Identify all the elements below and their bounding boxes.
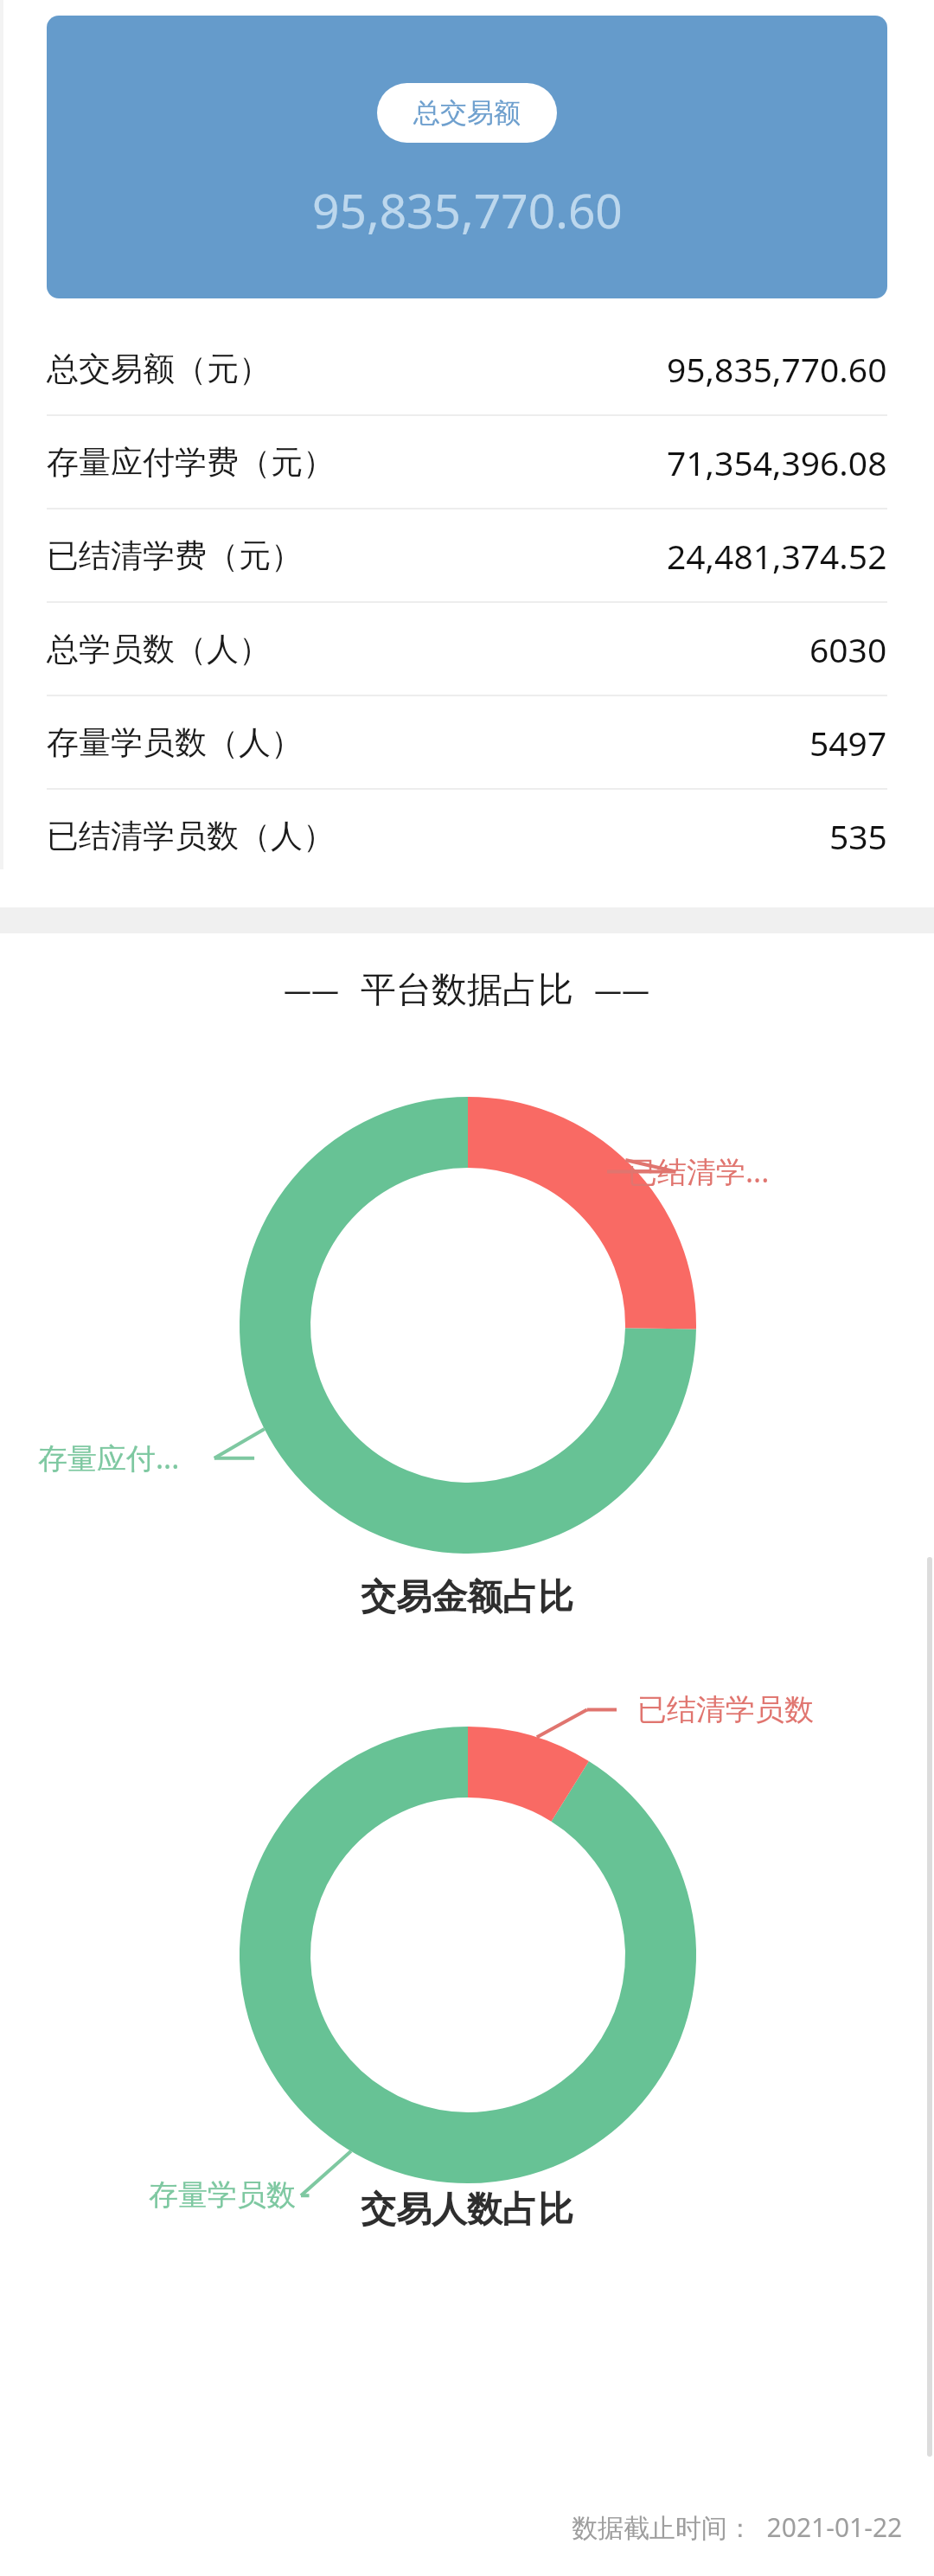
staticText: 95,835,770.60 [667, 346, 887, 392]
staticText: 存量应付学费（元） [47, 442, 335, 483]
staticText: 总交易额 [413, 96, 521, 130]
staticText: 95,835,770.60 [312, 177, 623, 242]
staticText: 已结清学员数（人） [47, 816, 335, 856]
staticText: 数据截止时间： 2021-01-22 [572, 2509, 903, 2545]
staticText: 存量学员数 [149, 2176, 296, 2214]
staticText: 交易金额占比 [361, 1575, 573, 1620]
staticText: 24,481,374.52 [667, 533, 887, 579]
button[interactable]: 已结清学员数（人） [0, 790, 934, 881]
staticText: 5497 [809, 720, 887, 766]
button[interactable]: 总交易额（元） [0, 323, 934, 414]
button[interactable]: 总交易额 [377, 83, 557, 143]
staticText: 71,354,396.08 [667, 439, 887, 485]
staticText: 已结清学... [628, 1151, 770, 1191]
staticText: —— [284, 971, 340, 1009]
staticText: 6030 [809, 626, 887, 672]
staticText: 已结清学员数 [637, 1691, 814, 1728]
staticText: 总交易额（元） [47, 349, 271, 389]
staticText: 总学员数（人） [47, 629, 271, 670]
button[interactable]: 存量应付学费（元） [0, 416, 934, 508]
other: Donut chart [0, 1726, 934, 2184]
button[interactable]: 已结清学费（元） [0, 509, 934, 601]
staticText: 存量学员数（人） [47, 722, 303, 763]
other: Donut chart [0, 1096, 934, 1554]
button[interactable]: 存量学员数（人） [0, 696, 934, 788]
button[interactable]: 总学员数（人） [0, 603, 934, 695]
staticText: 存量应付... [38, 1438, 180, 1477]
staticText: 平台数据占比 [361, 968, 573, 1013]
staticText: 交易人数占比 [361, 2188, 573, 2233]
staticText: 535 [829, 813, 887, 859]
button[interactable]: 总交易额 [47, 16, 887, 298]
staticText: 已结清学费（元） [47, 535, 303, 576]
staticText: —— [594, 971, 650, 1009]
